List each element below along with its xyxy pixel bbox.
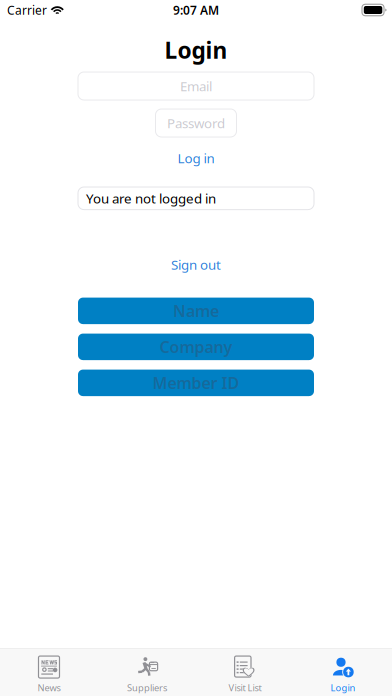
staticText: Sign out [171, 256, 221, 273]
staticText: Login [330, 682, 355, 694]
staticText: 9:07 AM [173, 2, 219, 18]
staticText: Company [159, 336, 232, 357]
button[interactable]: Company [78, 334, 314, 360]
button[interactable]: News [0, 649, 98, 696]
staticText: Password [167, 114, 225, 132]
button[interactable]: Member ID [78, 370, 314, 396]
button[interactable]: Visit List [196, 649, 294, 696]
button[interactable]: Password [155, 109, 236, 137]
button[interactable]: Suppliers [98, 649, 196, 696]
button[interactable]: Log in [177, 149, 214, 167]
button[interactable]: Login [294, 649, 392, 696]
staticText: You are not logged in [86, 189, 216, 207]
staticText: Member ID [152, 372, 239, 393]
staticText: Login [164, 35, 227, 65]
staticText: Suppliers [127, 682, 167, 694]
button[interactable]: Name [78, 298, 314, 324]
staticText: Email [180, 77, 212, 95]
staticText: Visit List [228, 682, 261, 694]
staticText: Log in [177, 149, 214, 167]
button[interactable]: Sign out [171, 256, 221, 274]
staticText: Carrier [7, 2, 47, 18]
staticText: Name [173, 300, 219, 321]
button[interactable]: Email [78, 72, 314, 100]
staticText: News [37, 682, 60, 694]
